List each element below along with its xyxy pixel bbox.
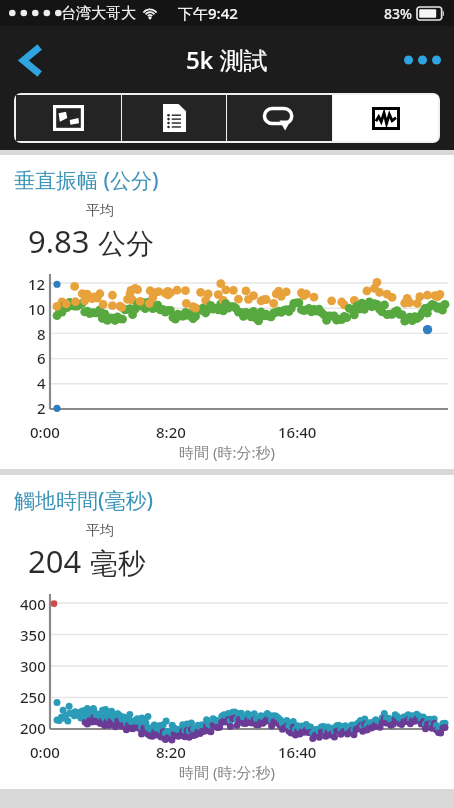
staticText: 300 — [20, 656, 46, 676]
staticText: 9.83 — [28, 220, 90, 262]
staticText: 5k 測試 — [186, 43, 268, 76]
staticText: 平均 — [86, 202, 114, 220]
staticText: 2 — [37, 398, 46, 418]
staticText: 觸地時間(毫秒) — [14, 486, 154, 515]
staticText: 公分 — [98, 226, 154, 261]
staticText: 0:00 — [30, 422, 60, 442]
button[interactable]: Back — [4, 33, 58, 87]
staticText: 台湾大哥大 — [61, 4, 136, 23]
staticText: 平均 — [86, 522, 114, 540]
staticText: 0:00 — [30, 742, 60, 762]
button[interactable]: Details — [122, 95, 226, 141]
staticText: 垂直振幅 (公分) — [14, 166, 159, 195]
staticText: 10 — [28, 299, 46, 319]
staticText: 83% — [384, 4, 412, 23]
button[interactable]: Laps — [227, 95, 332, 141]
staticText: 350 — [20, 625, 46, 645]
staticText: 400 — [20, 594, 46, 614]
staticText: 時間 (時:分:秒) — [0, 762, 454, 782]
staticText: 時間 (時:分:秒) — [0, 442, 454, 462]
staticText: 16:40 — [278, 742, 317, 762]
staticText: 250 — [20, 687, 46, 707]
staticText: 8:20 — [156, 742, 186, 762]
staticText: 16:40 — [278, 422, 317, 442]
button[interactable]: More options — [394, 33, 448, 87]
staticText: 8:20 — [156, 422, 186, 442]
staticText: 4 — [37, 373, 46, 393]
staticText: 下午9:42 — [178, 3, 238, 23]
staticText: 200 — [20, 718, 46, 738]
button[interactable]: Charts — [333, 95, 438, 141]
staticText: 204 — [28, 540, 82, 582]
staticText: 12 — [28, 274, 46, 294]
button[interactable]: Map — [16, 95, 121, 141]
staticText: 6 — [37, 348, 46, 368]
staticText: 8 — [37, 324, 46, 344]
staticText: 毫秒 — [90, 546, 146, 581]
